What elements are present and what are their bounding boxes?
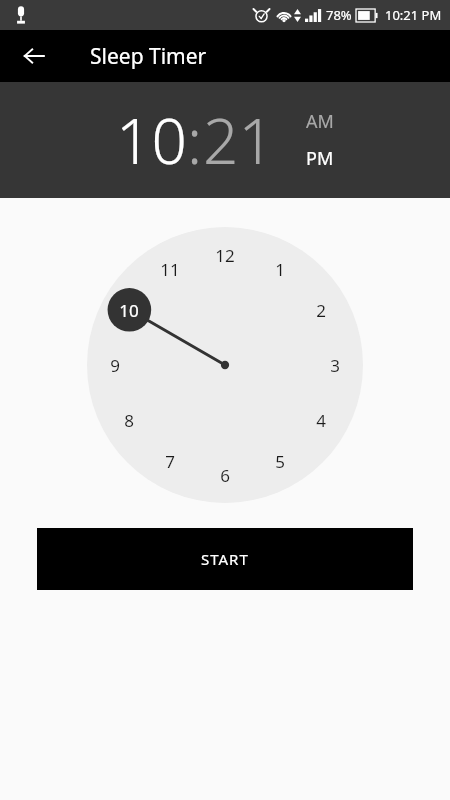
button[interactable]: Clock face, hour selector — [87, 227, 363, 503]
button[interactable]: PM — [306, 144, 334, 173]
staticText: 11 — [160, 258, 180, 281]
staticText: 8 — [124, 409, 134, 432]
staticText: 4 — [316, 409, 326, 432]
staticText: 5 — [275, 450, 285, 473]
button[interactable]: START — [37, 528, 413, 590]
button[interactable]: 10 — [116, 98, 187, 182]
staticText: 12 — [215, 244, 235, 267]
staticText: 10 — [119, 299, 139, 322]
staticText: START — [201, 549, 249, 569]
staticText: 6 — [220, 464, 230, 487]
staticText: 9 — [110, 354, 120, 377]
staticText: 1 — [275, 258, 285, 281]
staticText: 10:21 PM — [385, 6, 442, 24]
staticText: 78% — [326, 6, 352, 24]
button[interactable]: AM — [306, 107, 334, 136]
button[interactable]: Back — [12, 34, 56, 78]
staticText: : — [187, 98, 203, 182]
staticText: 2 — [316, 299, 326, 322]
staticText: 3 — [330, 354, 340, 377]
staticText: 7 — [165, 450, 175, 473]
staticText: Sleep Timer — [90, 42, 207, 71]
button[interactable]: 21 — [203, 98, 274, 182]
